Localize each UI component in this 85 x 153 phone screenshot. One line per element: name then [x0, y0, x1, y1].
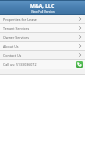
staticText: About Us	[3, 44, 19, 49]
staticText: Contact Us	[3, 53, 22, 58]
button[interactable]: Tenant Services	[0, 24, 85, 32]
staticText: Owner Services	[3, 35, 30, 40]
button[interactable]: Contact Us	[0, 51, 85, 59]
staticText: View Full Version	[31, 10, 55, 14]
staticText: Tenant Services	[3, 26, 30, 31]
button[interactable]: Call us: 5133036072	[0, 60, 85, 69]
staticText: M&A, LLC	[30, 2, 55, 9]
button[interactable]: Owner Services	[0, 33, 85, 41]
staticText: Properties for Lease	[3, 17, 37, 22]
staticText: Call us: 5133036072	[3, 62, 37, 67]
button[interactable]: Properties for Lease	[0, 15, 85, 23]
button[interactable]: Call us	[76, 61, 83, 68]
button[interactable]: About Us	[0, 42, 85, 50]
